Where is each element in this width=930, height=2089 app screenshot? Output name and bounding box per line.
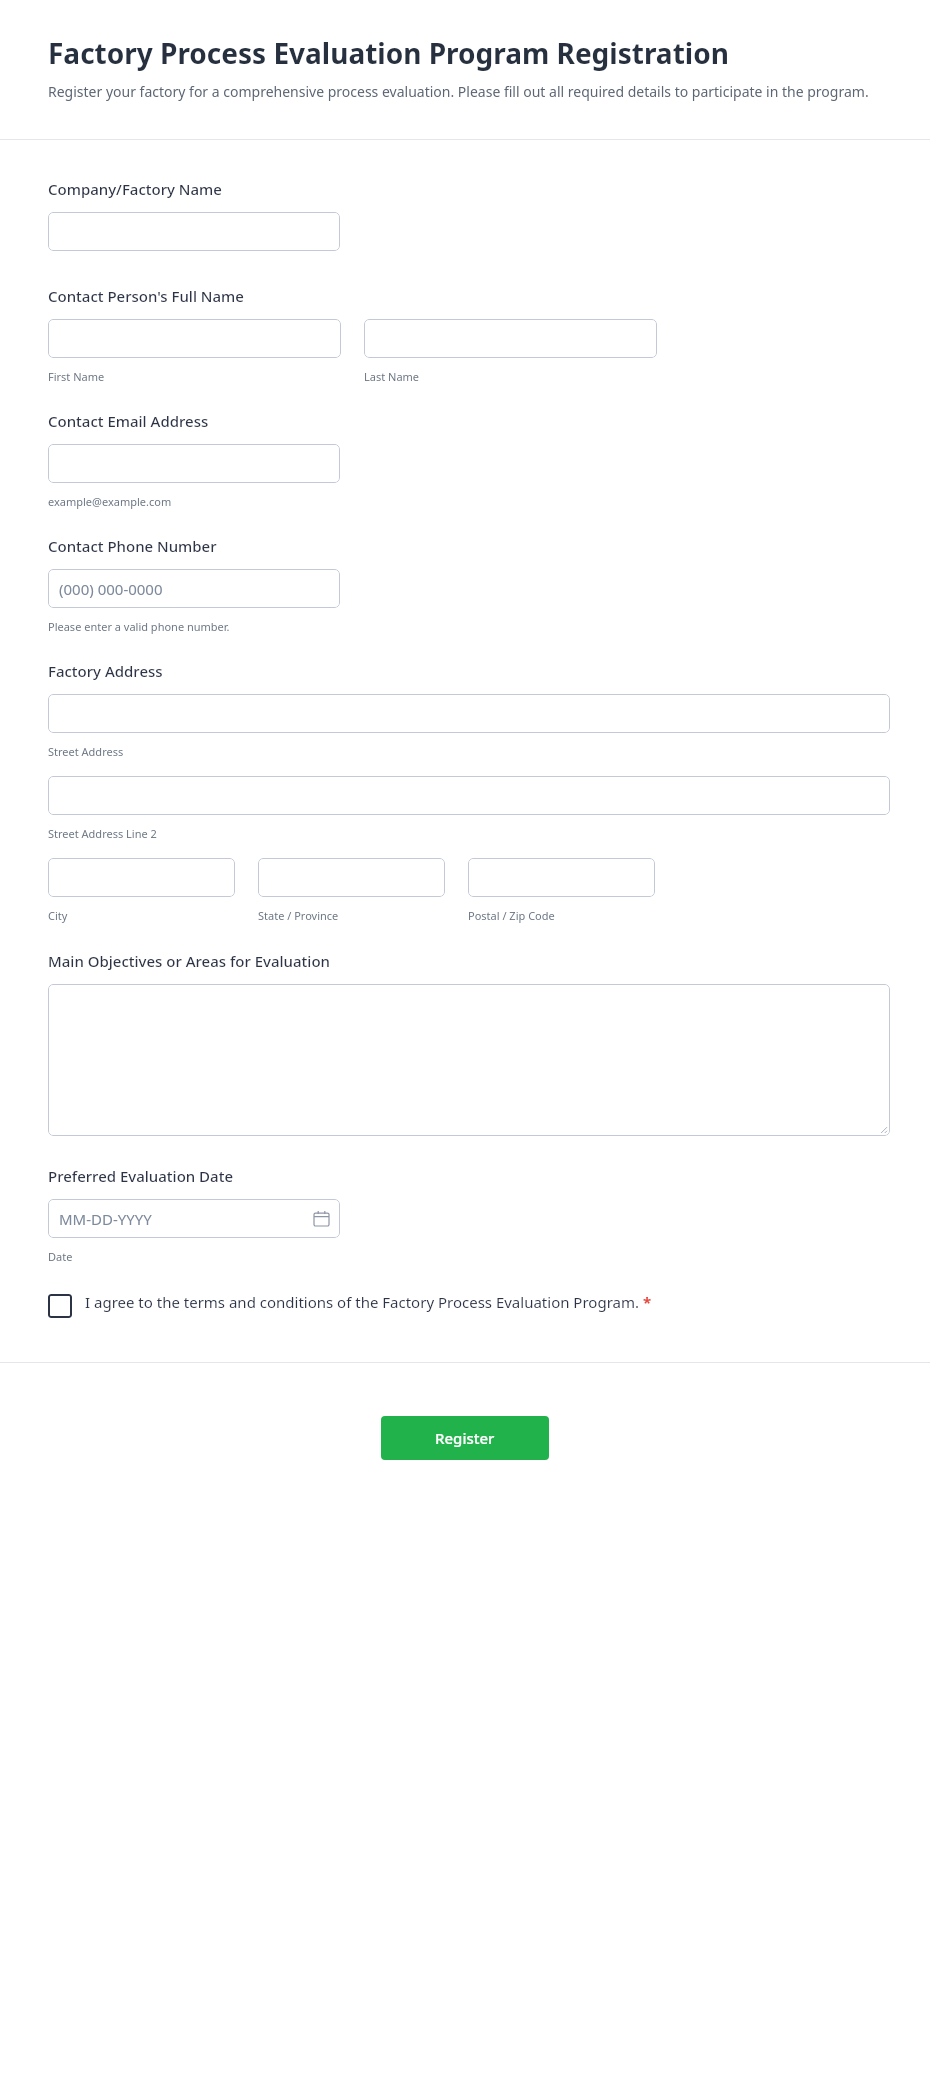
button[interactable] [48, 212, 340, 251]
staticText: Company/Factory Name [48, 179, 222, 199]
button[interactable]: MM-DD-YYYY [48, 1199, 340, 1238]
button[interactable] [48, 858, 235, 897]
staticText: Street Address [48, 744, 124, 759]
staticText: City [48, 908, 68, 923]
staticText: Contact Email Address [48, 411, 209, 431]
staticText: Factory Process Evaluation Program Regis… [48, 34, 729, 72]
staticText: example@example.com [48, 494, 172, 509]
button[interactable]: (000) 000-0000 [48, 569, 340, 608]
button[interactable] [364, 319, 657, 358]
staticText: Postal / Zip Code [468, 908, 555, 923]
staticText: I agree to the terms and conditions of t… [85, 1292, 890, 1312]
staticText: Date [48, 1249, 73, 1264]
button[interactable] [48, 984, 890, 1136]
staticText: Contact Person's Full Name [48, 286, 244, 306]
other: I agree to the terms and conditions [48, 1294, 72, 1318]
button[interactable] [48, 776, 890, 815]
staticText: MM-DD-YYYY [59, 1209, 152, 1229]
staticText: Street Address Line 2 [48, 826, 157, 841]
staticText: Main Objectives or Areas for Evaluation [48, 951, 330, 971]
staticText: (000) 000-0000 [59, 579, 163, 599]
staticText: Factory Address [48, 661, 163, 681]
staticText: Contact Phone Number [48, 536, 217, 556]
button[interactable] [468, 858, 655, 897]
staticText: Preferred Evaluation Date [48, 1166, 234, 1186]
button[interactable]: Register [381, 1416, 549, 1460]
staticText: State / Province [258, 908, 339, 923]
staticText: Register [435, 1428, 495, 1448]
button[interactable] [258, 858, 445, 897]
staticText: Last Name [364, 369, 420, 384]
button[interactable] [48, 319, 341, 358]
staticText: First Name [48, 369, 105, 384]
staticText: Register your factory for a comprehensiv… [48, 82, 869, 101]
button[interactable]: I agree to the terms and conditions [48, 1292, 890, 1318]
button[interactable] [48, 694, 890, 733]
button[interactable] [48, 444, 340, 483]
staticText: Please enter a valid phone number. [48, 619, 230, 634]
